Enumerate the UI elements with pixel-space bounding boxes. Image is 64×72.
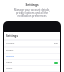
button[interactable]: General [4,54,60,59]
staticText: Edit [54,42,58,45]
button[interactable]: Privacy [4,48,60,53]
staticText: Alerts [6,61,12,64]
staticText: Settings [25,3,39,7]
button[interactable]: Account [4,41,60,46]
staticText: Account [6,42,15,45]
button[interactable]: About [4,66,60,71]
button[interactable]: Alerts [4,60,60,65]
staticText: Manage your account details, privacy opt… [14,8,50,17]
staticText: General [6,55,15,58]
staticText: Privacy [6,49,14,52]
staticText: About [6,67,13,70]
staticText: Settings [6,34,18,38]
